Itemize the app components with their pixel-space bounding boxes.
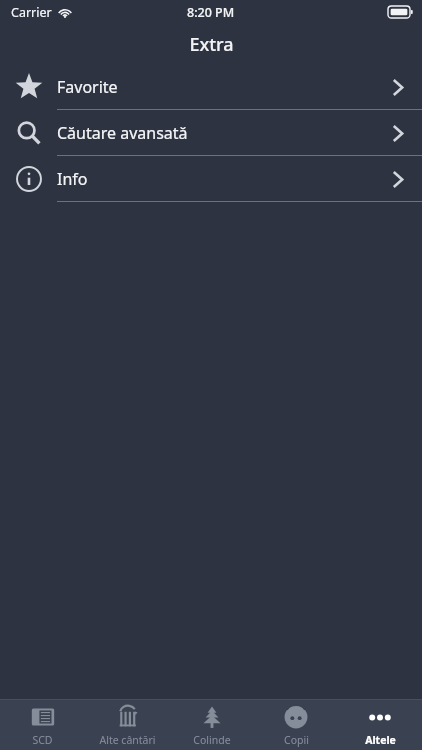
button[interactable]: Colinde — [170, 700, 254, 750]
button[interactable]: Favorite — [0, 64, 422, 110]
button[interactable]: Altele — [338, 700, 422, 750]
button[interactable]: Info — [0, 156, 422, 202]
other: Favorite — [0, 64, 57, 110]
staticText: 8:20 PM — [187, 4, 235, 21]
staticText: Colinde — [193, 733, 231, 747]
staticText: Favorite — [57, 76, 118, 98]
staticText: Altele — [365, 733, 396, 747]
staticText: Alte cântări — [99, 733, 156, 747]
staticText: Căutare avansată — [57, 122, 188, 144]
staticText: Extra — [189, 32, 234, 57]
staticText: Info — [57, 168, 88, 190]
button[interactable]: Alte cântări — [85, 700, 170, 750]
button[interactable]: Copii — [254, 700, 338, 750]
button[interactable]: Search — [0, 110, 422, 156]
button[interactable]: SCD — [0, 700, 85, 750]
staticText: Copii — [284, 733, 309, 747]
other: Search — [0, 110, 57, 156]
staticText: Carrier — [11, 4, 52, 21]
other: Info — [0, 156, 57, 202]
staticText: SCD — [32, 733, 53, 747]
